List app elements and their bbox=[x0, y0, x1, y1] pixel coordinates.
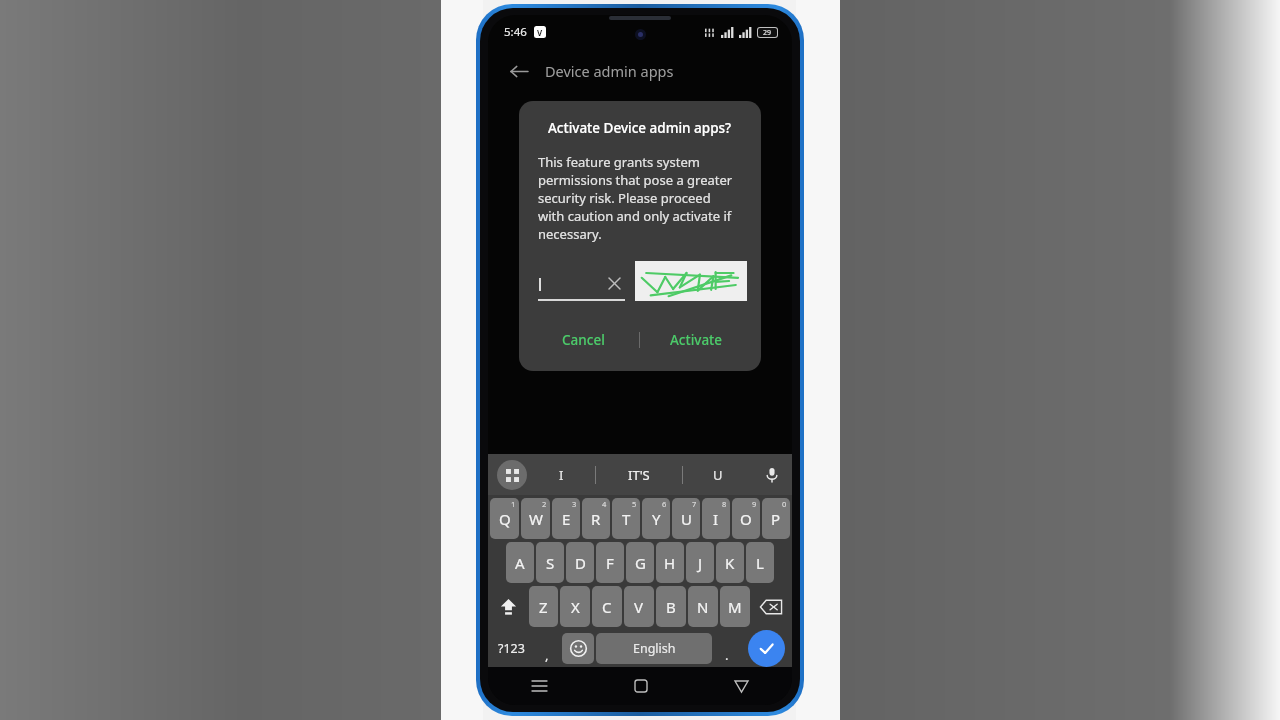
staticText: P bbox=[771, 509, 781, 529]
staticText: 8 bbox=[722, 499, 727, 509]
button[interactable]: F bbox=[596, 542, 624, 583]
staticText: K bbox=[725, 553, 735, 573]
staticText: R bbox=[591, 509, 601, 529]
staticText: M bbox=[728, 597, 742, 617]
button[interactable]: Cancel bbox=[527, 323, 639, 357]
button[interactable]: R bbox=[582, 498, 610, 539]
staticText: F bbox=[606, 553, 614, 573]
button[interactable]: , bbox=[534, 630, 560, 667]
staticText: 7 bbox=[692, 499, 697, 509]
staticText: C bbox=[602, 597, 612, 617]
button[interactable]: W bbox=[521, 498, 550, 539]
staticText: N bbox=[697, 597, 709, 617]
button[interactable]: J bbox=[686, 542, 714, 583]
button[interactable]: Home bbox=[590, 667, 691, 705]
staticText: English bbox=[633, 640, 676, 657]
button[interactable]: Shift bbox=[490, 586, 527, 627]
staticText: 9 bbox=[752, 499, 757, 509]
staticText: 5:46 bbox=[504, 24, 527, 40]
button[interactable]: X bbox=[560, 586, 590, 627]
staticText: 3 bbox=[572, 499, 577, 509]
button[interactable]: Back bbox=[488, 49, 792, 93]
button[interactable]: Back bbox=[691, 667, 792, 705]
button[interactable]: Enter bbox=[748, 630, 785, 667]
staticText: Z bbox=[539, 597, 548, 617]
staticText: G bbox=[635, 553, 646, 573]
staticText: X bbox=[571, 597, 580, 617]
button[interactable]: M bbox=[720, 586, 750, 627]
staticText: V bbox=[537, 27, 543, 38]
staticText: D bbox=[575, 553, 586, 573]
button[interactable]: Clear text bbox=[538, 263, 625, 301]
button[interactable]: S bbox=[536, 542, 564, 583]
button[interactable]: H bbox=[656, 542, 684, 583]
button[interactable]: A bbox=[506, 542, 534, 583]
staticText: Cancel bbox=[562, 331, 605, 349]
button[interactable]: Backspace bbox=[752, 586, 790, 627]
button[interactable]: P bbox=[762, 498, 790, 539]
button[interactable]: K bbox=[716, 542, 744, 583]
staticText: L bbox=[756, 553, 764, 573]
staticText: A bbox=[515, 553, 525, 573]
staticText: , bbox=[545, 646, 549, 664]
button[interactable]: Captcha image bbox=[635, 261, 747, 301]
button[interactable]: I bbox=[527, 466, 595, 484]
button[interactable]: Clear text bbox=[603, 272, 625, 294]
button[interactable]: English bbox=[596, 633, 712, 664]
staticText: 4 bbox=[602, 499, 607, 509]
button[interactable]: E bbox=[552, 498, 580, 539]
button[interactable]: L bbox=[746, 542, 774, 583]
staticText: V bbox=[634, 597, 644, 617]
staticText: I bbox=[559, 466, 564, 484]
staticText: B bbox=[666, 597, 676, 617]
button[interactable]: . bbox=[714, 630, 740, 667]
staticText: O bbox=[740, 509, 752, 529]
button[interactable]: V bbox=[624, 586, 654, 627]
staticText: Activate bbox=[670, 331, 723, 349]
staticText: Q bbox=[499, 509, 511, 529]
button[interactable]: B bbox=[656, 586, 686, 627]
button[interactable]: Activate bbox=[640, 323, 753, 357]
button[interactable]: Recent apps bbox=[488, 667, 590, 705]
staticText: J bbox=[698, 553, 703, 573]
button[interactable]: Back bbox=[506, 58, 532, 84]
button[interactable]: Z bbox=[529, 586, 558, 627]
button[interactable]: D bbox=[566, 542, 594, 583]
staticText: . bbox=[725, 646, 729, 664]
button[interactable]: G bbox=[626, 542, 654, 583]
staticText: H bbox=[664, 553, 676, 573]
button[interactable]: N bbox=[688, 586, 718, 627]
staticText: S bbox=[546, 553, 555, 573]
staticText: 29 bbox=[763, 28, 772, 37]
button[interactable]: Voice input bbox=[752, 454, 792, 495]
staticText: U bbox=[681, 509, 692, 529]
staticText: Y bbox=[652, 509, 661, 529]
staticText: Device admin apps bbox=[545, 61, 674, 81]
button[interactable]: Keyboard menu bbox=[497, 460, 527, 490]
button[interactable]: C bbox=[592, 586, 622, 627]
button[interactable]: Emoji bbox=[562, 633, 594, 664]
staticText: U bbox=[713, 466, 723, 484]
button[interactable]: T bbox=[612, 498, 640, 539]
staticText: I bbox=[713, 509, 719, 529]
button[interactable]: O bbox=[732, 498, 760, 539]
staticText: Activate Device admin apps? bbox=[548, 119, 732, 137]
staticText: ?123 bbox=[498, 640, 525, 657]
staticText: IT'S bbox=[628, 466, 650, 484]
staticText: This feature grants system permissions t… bbox=[538, 153, 733, 243]
staticText: 6 bbox=[662, 499, 667, 509]
button[interactable]: Q bbox=[490, 498, 519, 539]
button[interactable]: U bbox=[683, 466, 752, 484]
staticText: 5 bbox=[632, 499, 637, 509]
button[interactable]: U bbox=[672, 498, 700, 539]
staticText: E bbox=[562, 509, 571, 529]
button[interactable]: Y bbox=[642, 498, 670, 539]
staticText: 1 bbox=[511, 499, 516, 509]
button[interactable]: IT'S bbox=[596, 466, 682, 484]
button[interactable]: I bbox=[702, 498, 730, 539]
staticText: W bbox=[529, 509, 543, 529]
staticText: T bbox=[622, 509, 631, 529]
button[interactable]: ?123 bbox=[490, 630, 532, 667]
staticText: 2 bbox=[542, 499, 547, 509]
staticText: 0 bbox=[782, 499, 787, 509]
